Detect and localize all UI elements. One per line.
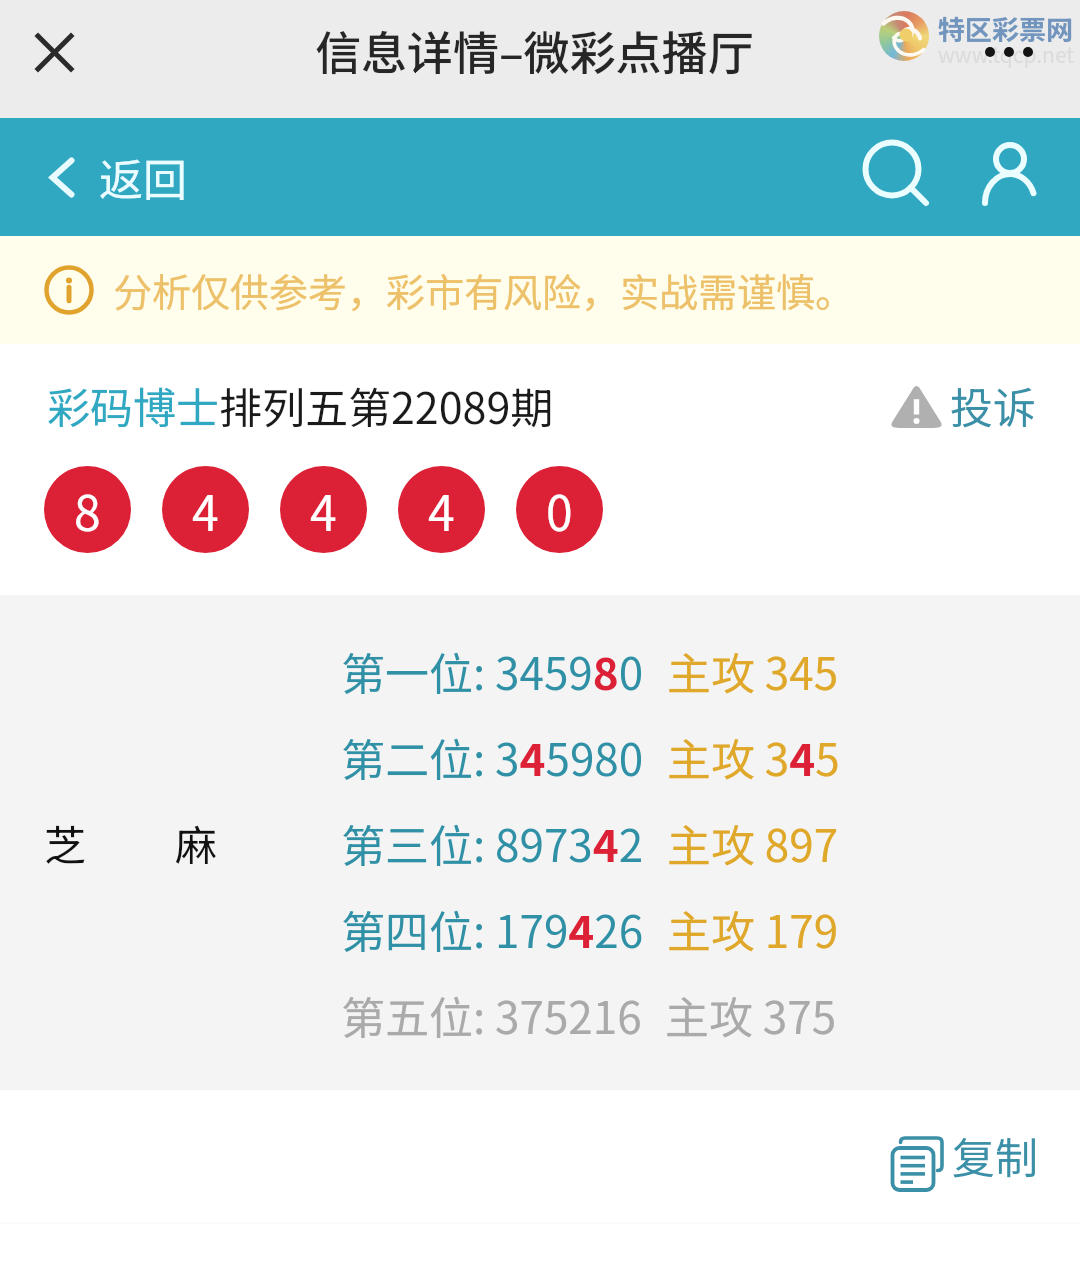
staticText: 彩码博士排列五第22089期 [47,374,554,436]
staticText: 第二位: 345980 [341,725,644,789]
staticText: 4 [428,475,455,545]
button[interactable]: Close [20,18,88,86]
staticText: 8 [74,475,101,545]
staticText: www.tqcp.net [938,39,1075,69]
staticText: 0 [546,475,573,545]
staticText: 返回 [99,145,187,209]
staticText: 第三位: 897342 [341,811,644,875]
staticText: 4 [192,475,219,545]
button[interactable]: Search [850,129,946,219]
staticText: 主攻 375 [665,983,837,1047]
button[interactable]: 第三位: 897342 [341,800,839,886]
button[interactable]: 第二位: 345980 [341,714,840,800]
staticText: 芝 [44,812,87,873]
staticText: 复制 [952,1124,1038,1186]
staticText: 4 [310,475,337,545]
staticText: 第一位: 345980 [341,639,644,703]
button[interactable]: 返回 [50,145,187,209]
staticText: 主攻 345 [667,725,840,789]
button[interactable]: Profile [962,129,1058,219]
staticText: 特区彩票网 [938,9,1073,48]
staticText: 信息详情–微彩点播厅 [315,17,754,84]
button[interactable]: 第四位: 179426 [341,886,839,972]
staticText: 第五位: 375216 [341,983,642,1047]
staticText: 麻 [175,812,218,873]
staticText: 主攻 179 [667,897,839,961]
button[interactable]: 第一位: 345980 [341,628,839,714]
button[interactable]: 复制 [892,1124,1038,1186]
staticText: 第四位: 179426 [341,897,644,961]
staticText: 投诉 [950,374,1036,436]
staticText: 主攻 897 [667,811,839,875]
staticText: 主攻 345 [667,639,839,703]
staticText: 分析仅供参考，彩市有风险，实战需谨慎。 [113,262,855,318]
button[interactable]: 投诉 [889,374,1036,436]
button[interactable]: 第五位: 375216 [341,972,837,1058]
